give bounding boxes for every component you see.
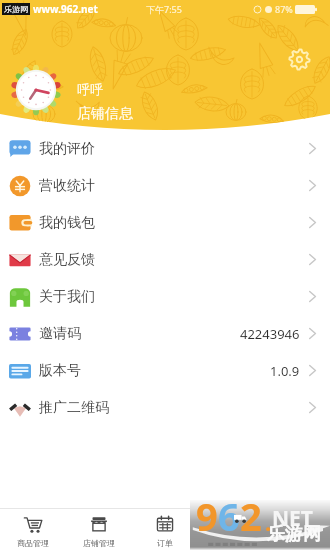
button[interactable]: 邀请码 <box>0 315 330 352</box>
staticText: 42243946 <box>240 325 300 343</box>
staticText: 商品管理 <box>17 538 49 548</box>
button[interactable]: 营收统计 <box>0 167 330 204</box>
button[interactable]: 我的钱包 <box>0 204 330 241</box>
staticText: 我的评价 <box>39 140 95 158</box>
staticText: www.962.net <box>33 2 98 16</box>
button[interactable]: 店铺管理 <box>66 509 132 548</box>
staticText: 呼呼 <box>77 81 103 97</box>
staticText: 我的钱包 <box>39 214 95 232</box>
button[interactable]: Settings <box>288 48 311 71</box>
staticText: 1.0.9 <box>270 362 300 380</box>
button[interactable]: 关于我们 <box>0 278 330 315</box>
button[interactable]: 订单 <box>132 509 198 548</box>
staticText: 下午7:55 <box>146 3 182 15</box>
button[interactable]: 我的评价 <box>0 130 330 167</box>
staticText: 乐游网 <box>4 4 28 14</box>
button[interactable]: 意见反馈 <box>0 241 330 278</box>
button[interactable]: 版本号 <box>0 352 330 389</box>
staticText: 推广二维码 <box>39 399 109 417</box>
button[interactable]: 商品管理 <box>0 509 66 548</box>
staticText: NET <box>272 504 313 533</box>
staticText: 乐游网 <box>267 523 321 546</box>
staticText: . <box>265 507 272 537</box>
staticText: 邀请码 <box>39 325 81 343</box>
staticText: 意见反馈 <box>39 251 95 269</box>
button[interactable]: 推广二维码 <box>0 389 330 426</box>
button[interactable]: 统计 <box>198 509 264 548</box>
staticText: 2 <box>240 490 262 540</box>
staticText: 订单 <box>157 538 173 548</box>
staticText: 6 <box>218 490 240 540</box>
staticText: 店铺管理 <box>83 538 115 548</box>
staticText: 版本号 <box>39 362 81 380</box>
staticText: 统计 <box>223 538 239 548</box>
button[interactable]: 我的 <box>264 509 330 548</box>
staticText: 营收统计 <box>39 177 95 195</box>
staticText: 9 <box>196 490 218 540</box>
staticText: 关于我们 <box>39 288 95 306</box>
staticText: 我的 <box>289 538 305 548</box>
staticText: 87% <box>275 3 293 15</box>
staticText: 店铺信息 <box>77 105 133 123</box>
